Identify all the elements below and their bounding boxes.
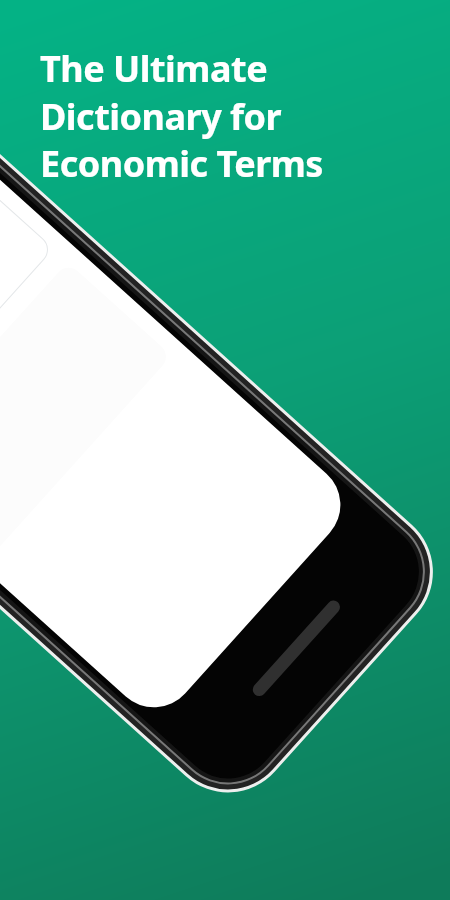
other: Dictionary app preview on a phone bbox=[0, 0, 450, 900]
button[interactable]: The Ultimate Dictionary for Economic Ter… bbox=[40, 44, 323, 187]
staticText: The Ultimate Dictionary for Economic Ter… bbox=[40, 44, 323, 187]
